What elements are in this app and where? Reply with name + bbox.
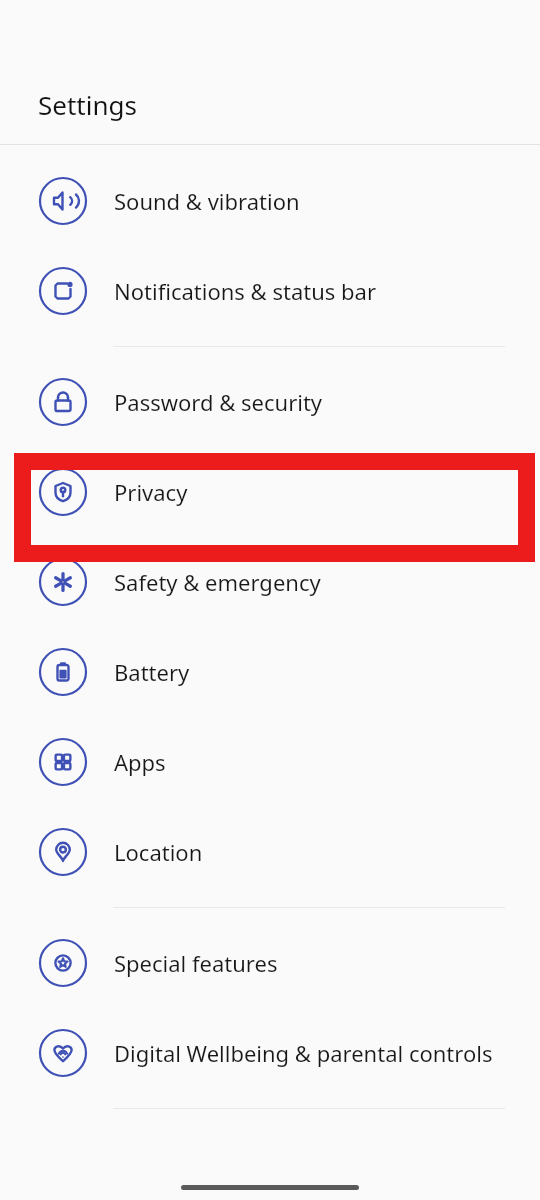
staticText: Sound & vibration [114,186,300,216]
other: Special features [39,939,87,987]
staticText: Notifications & status bar [114,276,376,306]
other: Location [39,828,87,876]
button[interactable]: Privacy [0,447,540,537]
button[interactable]: Notifications & status bar [0,246,540,336]
other: Password & security [39,378,87,426]
other: Sound & vibration [39,177,87,225]
staticText: Battery [114,657,190,687]
staticText: Location [114,837,203,867]
button[interactable]: Sound & vibration [0,156,540,246]
staticText: Safety & emergency [114,567,321,597]
staticText: Password & security [114,387,323,417]
other: Safety & emergency [39,558,87,606]
staticText: Digital Wellbeing & parental controls [114,1038,493,1068]
other: Apps [39,738,87,786]
other: Notifications & status bar [39,267,87,315]
other: Battery [39,648,87,696]
other: Digital Wellbeing & parental controls [39,1029,87,1077]
button[interactable]: Apps [0,717,540,807]
button[interactable]: Special features [0,918,540,1008]
staticText: Settings [38,87,137,122]
button[interactable]: Battery [0,627,540,717]
staticText: Apps [114,747,166,777]
staticText: Privacy [114,477,188,507]
other: Privacy [39,468,87,516]
button[interactable]: Safety & emergency [0,537,540,627]
button[interactable]: Digital Wellbeing & parental controls [0,1008,540,1098]
staticText: Special features [114,948,278,978]
button[interactable]: Location [0,807,540,897]
button[interactable]: Password & security [0,357,540,447]
